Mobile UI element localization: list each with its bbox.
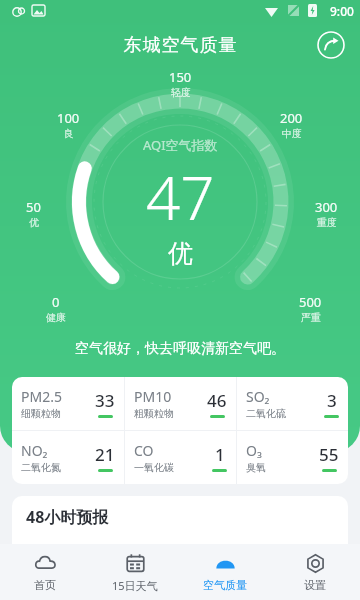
staticText: 150 [169, 68, 192, 86]
staticText: 首页 [34, 578, 56, 592]
staticText: 0 [52, 293, 60, 311]
staticText: PM10 [134, 387, 172, 406]
button[interactable]: SO₂ [237, 377, 348, 430]
staticText: 21 [95, 443, 115, 466]
staticText: 设置 [304, 578, 326, 592]
staticText: 50 [26, 198, 41, 216]
staticText: 1 [215, 443, 225, 466]
staticText: 9:00 [330, 3, 354, 19]
staticText: 东城空气质量 [123, 34, 237, 57]
staticText: 二氧化氮 [21, 461, 61, 474]
staticText: 轻度 [171, 86, 191, 99]
button[interactable]: CO [125, 431, 236, 484]
button[interactable]: 设置 [270, 544, 360, 600]
staticText: 空气很好，快去呼吸清新空气吧。 [0, 340, 360, 358]
button[interactable]: 空气质量 [180, 544, 270, 600]
button[interactable]: 48小时预报 [12, 496, 348, 556]
staticText: 重度 [317, 216, 337, 229]
staticText: 200 [280, 109, 303, 127]
staticText: 15日天气 [112, 578, 158, 593]
staticText: 粗颗粒物 [134, 407, 174, 420]
staticText: O₃ [246, 441, 262, 460]
staticText: 臭氧 [246, 461, 266, 474]
button[interactable]: 首页 [0, 544, 90, 600]
staticText: 33 [95, 389, 115, 412]
staticText: PM2.5 [21, 387, 62, 406]
staticText: 3 [327, 389, 337, 412]
button[interactable]: Share [314, 28, 348, 62]
staticText: 优 [29, 216, 39, 229]
staticText: 48小时预报 [26, 506, 109, 528]
staticText: 健康 [46, 311, 66, 324]
staticText: 47 [146, 156, 215, 238]
button[interactable]: 15日天气 [90, 544, 180, 600]
staticText: NO₂ [21, 441, 48, 460]
button[interactable]: NO₂ [12, 431, 124, 484]
staticText: 空气质量 [203, 578, 247, 592]
staticText: 500 [299, 293, 322, 311]
staticText: 细颗粒物 [21, 407, 61, 420]
staticText: 100 [57, 109, 80, 127]
button[interactable]: PM2.5 [12, 377, 124, 430]
staticText: 300 [315, 198, 338, 216]
staticText: SO₂ [246, 387, 270, 406]
staticText: 严重 [301, 311, 321, 324]
staticText: 优 [168, 238, 193, 269]
staticText: CO [134, 441, 154, 460]
button[interactable]: PM10 [125, 377, 236, 430]
staticText: 55 [319, 443, 339, 466]
staticText: 二氧化硫 [246, 407, 286, 420]
staticText: 46 [207, 389, 227, 412]
staticText: 中度 [282, 127, 302, 140]
staticText: 良 [64, 127, 74, 140]
staticText: 一氧化碳 [134, 461, 174, 474]
button[interactable]: O₃ [237, 431, 348, 484]
staticText: AQI空气指数 [143, 136, 218, 154]
